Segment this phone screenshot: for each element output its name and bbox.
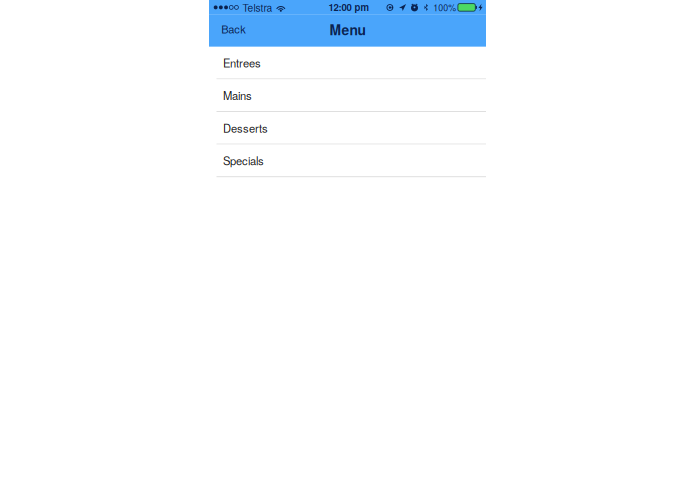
staticText: Back — [221, 21, 246, 37]
staticText: Entrees — [223, 55, 261, 71]
staticText: 100% — [433, 1, 456, 14]
button[interactable]: Specials — [209, 145, 486, 177]
button[interactable]: Mains — [209, 79, 486, 112]
staticText: Menu — [329, 20, 365, 40]
staticText: Telstra — [242, 0, 272, 15]
button[interactable]: Desserts — [209, 112, 486, 145]
button[interactable]: Back — [209, 15, 256, 47]
staticText: Mains — [223, 87, 252, 103]
staticText: Specials — [223, 152, 264, 168]
staticText: Desserts — [223, 120, 268, 136]
button[interactable]: Entrees — [209, 47, 486, 79]
staticText: 12:00 pm — [329, 0, 370, 14]
